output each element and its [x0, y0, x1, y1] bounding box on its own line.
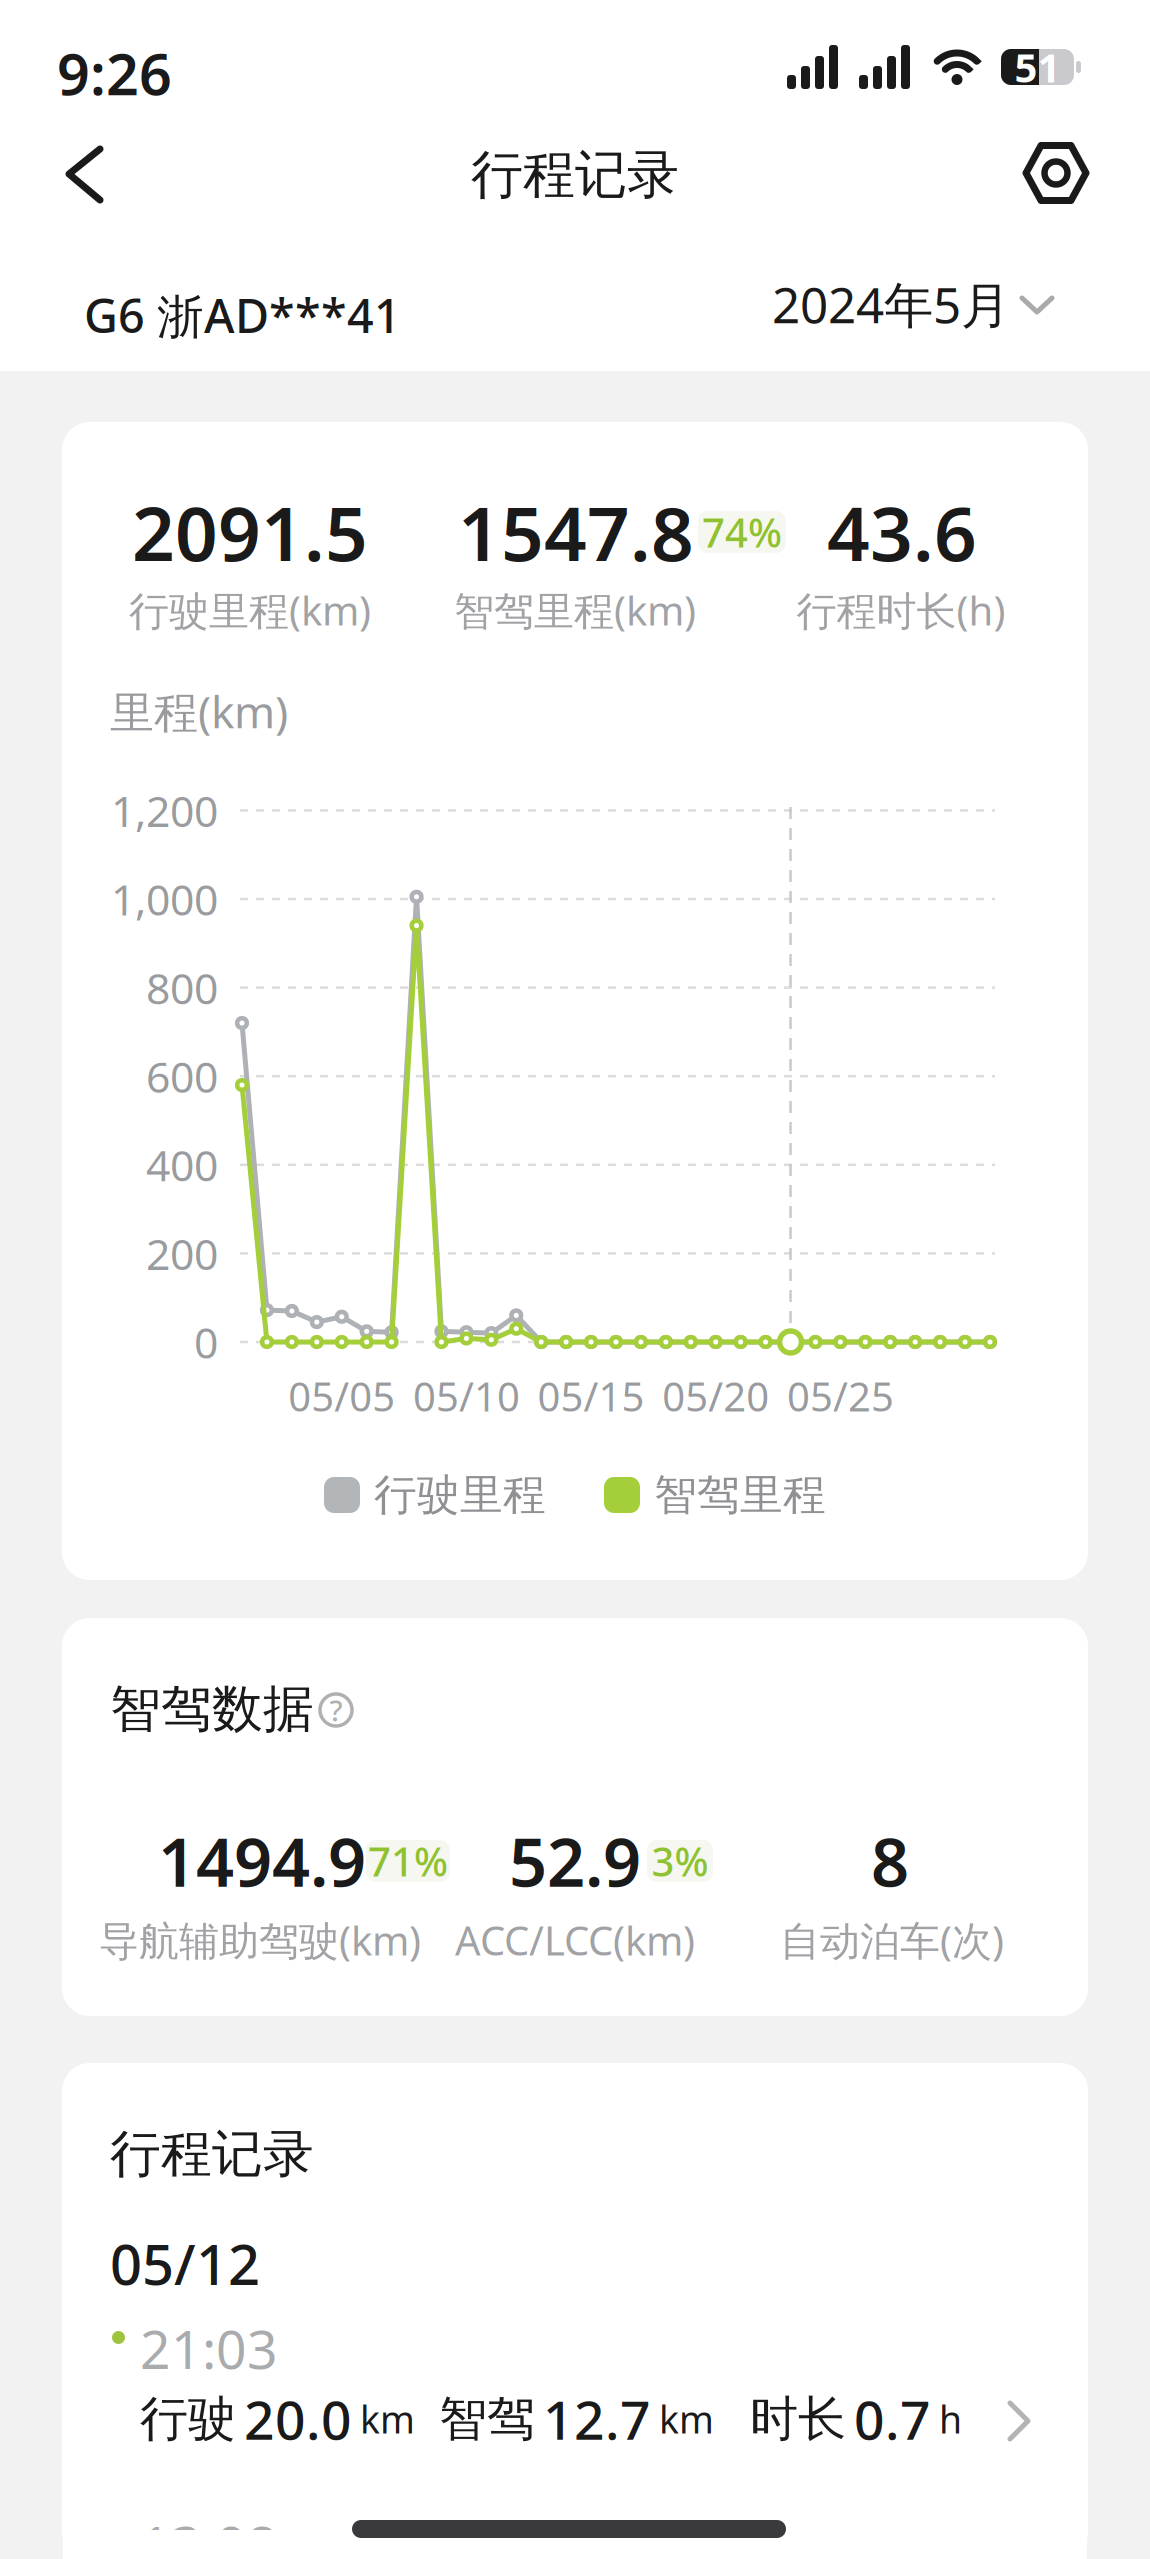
staticText: 1,200: [111, 782, 218, 839]
staticText: 1,000: [111, 871, 218, 927]
button[interactable]: 2024年5月: [636, 272, 1056, 336]
staticText: 21:03: [140, 2313, 278, 2384]
staticText: ?: [329, 1690, 342, 1729]
staticText: km: [360, 2394, 415, 2444]
staticText: 智驾里程(km): [454, 583, 696, 636]
button[interactable]: 帮助: [320, 1694, 352, 1726]
staticText: 74%: [702, 505, 782, 558]
staticText: 05/05: [288, 1369, 395, 1422]
staticText: 51: [1014, 40, 1060, 93]
staticText: 2091.5: [132, 482, 368, 582]
staticText: 导航辅助驾驶(km): [99, 1913, 421, 1966]
staticText: 20.0: [244, 2384, 352, 2454]
staticText: 自动泊车(次): [780, 1913, 1004, 1966]
staticText: km: [659, 2394, 714, 2444]
staticText: 行驶: [140, 2389, 236, 2448]
staticText: 行驶里程(km): [129, 583, 371, 636]
staticText: 12.7: [543, 2384, 651, 2454]
staticText: 智驾: [439, 2389, 535, 2448]
staticText: 05/15: [538, 1369, 645, 1422]
staticText: 71%: [368, 1834, 448, 1887]
staticText: 05/12: [110, 2226, 260, 2300]
staticText: 52.9: [509, 1817, 641, 1905]
staticText: 3%: [651, 1834, 708, 1887]
button[interactable]: 行驶: [62, 2387, 1150, 2559]
staticText: 05/25: [787, 1369, 894, 1422]
staticText: 600: [146, 1048, 218, 1105]
staticText: 行程时长(h): [796, 583, 1005, 636]
staticText: 智驾数据: [110, 1678, 314, 1740]
staticText: 0.7: [854, 2384, 931, 2454]
staticText: 时长: [750, 2389, 846, 2448]
staticText: 43.6: [827, 482, 977, 582]
staticText: 400: [146, 1136, 218, 1193]
staticText: 200: [146, 1225, 218, 1282]
staticText: 05/10: [413, 1369, 520, 1422]
staticText: 里程(km): [110, 682, 288, 740]
staticText: 智驾里程: [654, 1469, 826, 1521]
staticText: 1494.9: [158, 1817, 366, 1905]
staticText: 行程记录: [110, 2123, 314, 2185]
staticText: 9:26: [57, 35, 172, 111]
staticText: 05/20: [662, 1369, 769, 1422]
staticText: 行驶里程: [374, 1469, 546, 1521]
staticText: 1547.8: [458, 482, 694, 582]
staticText: 行程记录: [471, 143, 679, 207]
staticText: 800: [146, 959, 218, 1016]
staticText: 0: [194, 1314, 218, 1370]
button[interactable]: Settings: [1011, 130, 1101, 220]
staticText: ACC/LCC(km): [455, 1913, 695, 1966]
button[interactable]: Back: [0, 130, 140, 220]
staticText: h: [939, 2394, 962, 2444]
staticText: 8: [871, 1817, 909, 1905]
staticText: 13:08: [140, 2509, 278, 2559]
staticText: 2024年5月: [772, 271, 1010, 337]
staticText: G6 浙AD***41: [84, 284, 401, 346]
